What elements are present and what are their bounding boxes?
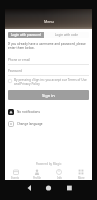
button[interactable]: Login with password <box>8 32 44 38</box>
staticText: By pressing »Sign in« you accept our Ter… <box>14 78 89 86</box>
staticText: If you already have a username and passw… <box>8 42 89 50</box>
staticText: Login with password <box>11 33 41 37</box>
button[interactable]: Sign in <box>8 90 89 100</box>
button[interactable]: More <box>70 168 92 180</box>
staticText: Sign in <box>42 93 55 98</box>
button[interactable]: Events <box>5 168 26 180</box>
staticText: Events <box>11 176 20 180</box>
staticText: Menu <box>44 19 54 24</box>
staticText: Profile <box>33 176 41 180</box>
button[interactable]: Change language <box>8 121 89 127</box>
button[interactable]: Profile <box>26 168 48 180</box>
staticText: Phone or email <box>8 58 31 62</box>
staticText: Login with code <box>55 33 78 37</box>
staticText: Powered by Magic <box>5 162 92 166</box>
staticText: Password <box>8 69 22 73</box>
staticText: No notifications <box>17 110 40 114</box>
button[interactable]: Info <box>48 168 70 180</box>
staticText: More <box>78 176 85 180</box>
staticText: Info <box>57 176 62 180</box>
button[interactable]: No notifications <box>8 109 89 115</box>
button[interactable]: Login with code <box>44 32 89 38</box>
staticText: Change language <box>17 122 43 126</box>
